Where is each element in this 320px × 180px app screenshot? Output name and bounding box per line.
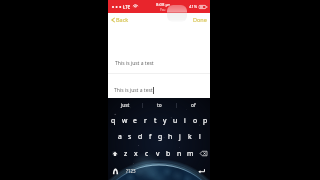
staticText: This is just a test	[115, 60, 154, 67]
button[interactable]: x	[131, 145, 141, 162]
staticText: s	[128, 132, 132, 141]
button[interactable]: v	[152, 145, 163, 162]
staticText: Done	[193, 16, 207, 23]
staticText: n	[177, 149, 182, 158]
button[interactable]: i	[180, 112, 190, 128]
staticText: x	[134, 149, 138, 158]
button[interactable]: w	[119, 112, 130, 128]
button[interactable]: e	[130, 112, 140, 128]
button[interactable]: of	[177, 98, 210, 112]
button[interactable]: d	[135, 128, 145, 145]
button[interactable]: Done	[193, 16, 207, 23]
staticText: f	[149, 132, 152, 141]
button[interactable]: Shift	[108, 145, 121, 162]
staticText: j	[179, 132, 181, 141]
staticText: of	[191, 102, 196, 109]
staticText: i	[184, 116, 186, 125]
button[interactable]: c	[141, 145, 152, 162]
staticText: t	[154, 116, 157, 125]
staticText: b	[166, 149, 171, 158]
button[interactable]: t	[150, 112, 160, 128]
button[interactable]: z	[121, 145, 131, 162]
staticText: 41%	[189, 4, 198, 10]
button[interactable]: ?123	[122, 162, 139, 180]
button[interactable]: l	[195, 128, 205, 145]
button[interactable]: k	[185, 128, 195, 145]
staticText: just	[121, 102, 130, 109]
staticText: g	[158, 132, 163, 141]
button[interactable]: f	[145, 128, 155, 145]
staticText: e	[133, 116, 137, 125]
button[interactable]: r	[140, 112, 150, 128]
staticText: m	[187, 149, 194, 158]
button[interactable]: to	[143, 98, 176, 112]
staticText: h	[168, 132, 173, 141]
button[interactable]: just	[108, 98, 142, 112]
button[interactable]: y	[160, 112, 170, 128]
button[interactable]: m	[185, 145, 196, 162]
staticText: l	[199, 132, 201, 141]
button[interactable]: s	[125, 128, 135, 145]
button[interactable]: Theme	[108, 162, 122, 180]
staticText: d	[138, 132, 143, 141]
button[interactable]: q	[108, 112, 119, 128]
button[interactable]: n	[174, 145, 185, 162]
staticText: v	[156, 149, 160, 158]
button[interactable]: j	[175, 128, 185, 145]
staticText: Back	[116, 16, 129, 23]
staticText: p	[203, 116, 208, 125]
button[interactable]: h	[165, 128, 175, 145]
staticText: u	[173, 116, 178, 125]
staticText: LTE	[123, 4, 131, 10]
staticText: q	[111, 116, 116, 125]
staticText: y	[163, 116, 167, 125]
button[interactable]: Enter	[193, 162, 210, 180]
staticText: z	[124, 149, 128, 158]
button[interactable]: b	[163, 145, 174, 162]
staticText: Pau	[160, 8, 166, 12]
staticText: a	[118, 132, 122, 141]
staticText: ?123	[126, 168, 136, 174]
button[interactable]: Backspace	[196, 145, 210, 162]
button[interactable]: Space	[139, 162, 193, 180]
staticText: to	[157, 102, 162, 109]
staticText: c	[145, 149, 149, 158]
button[interactable]: Back	[111, 16, 129, 23]
button[interactable]: g	[155, 128, 165, 145]
staticText: This is just a test	[114, 87, 153, 94]
staticText: w	[122, 116, 128, 125]
button[interactable]: u	[170, 112, 180, 128]
staticText: r	[144, 116, 147, 125]
staticText: 8:08 µт	[156, 2, 170, 8]
button[interactable]: p	[200, 112, 210, 128]
button[interactable]: o	[190, 112, 200, 128]
button[interactable]: a	[114, 128, 125, 145]
staticText: o	[193, 116, 198, 125]
staticText: k	[188, 132, 192, 141]
